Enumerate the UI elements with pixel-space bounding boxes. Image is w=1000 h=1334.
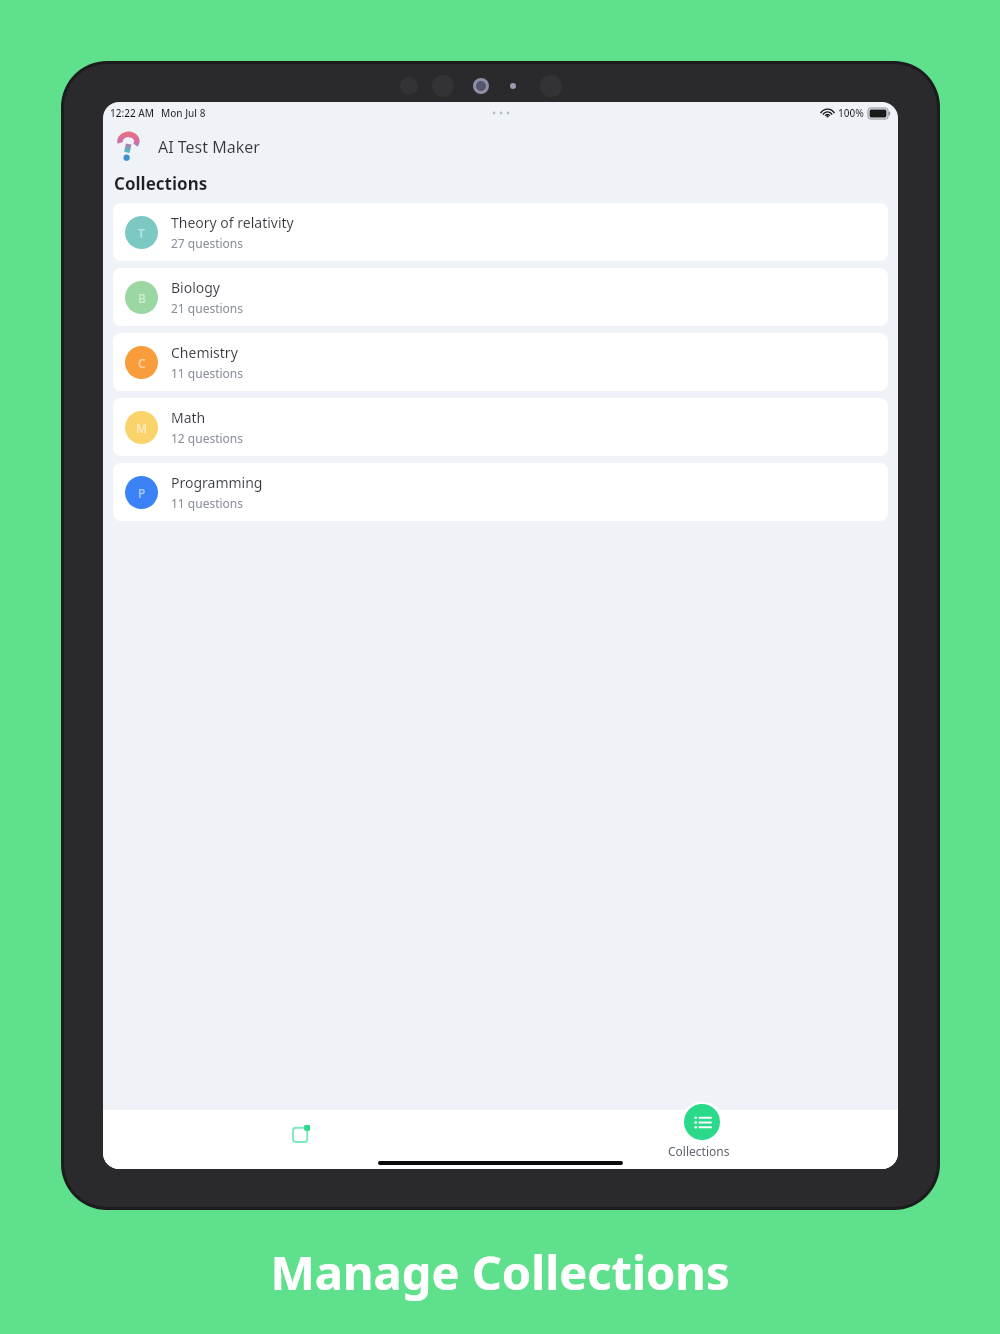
staticText: 11 questions xyxy=(171,495,244,511)
staticText: AI Test Maker xyxy=(158,136,260,158)
button[interactable]: Collections xyxy=(500,1110,898,1169)
staticText: Collections xyxy=(114,172,208,195)
button[interactable]: B xyxy=(113,268,888,326)
button[interactable]: P xyxy=(113,463,888,521)
staticText: 100% xyxy=(838,106,864,120)
button[interactable]: C xyxy=(113,333,888,391)
staticText: Manage Collections xyxy=(0,1240,1000,1304)
staticText: 11 questions xyxy=(171,365,244,381)
staticText: 12 questions xyxy=(171,430,244,446)
staticText: Mon Jul 8 xyxy=(161,106,206,120)
button[interactable]: M xyxy=(113,398,888,456)
staticText: 12:22 AM xyxy=(110,106,154,120)
staticText: M xyxy=(136,420,148,436)
button[interactable]: T xyxy=(113,203,888,261)
staticText: P xyxy=(138,485,146,501)
staticText: T xyxy=(138,225,145,241)
staticText: Theory of relativity xyxy=(171,213,294,232)
staticText: 27 questions xyxy=(171,235,244,251)
staticText: 21 questions xyxy=(171,300,244,316)
staticText: Chemistry xyxy=(171,343,238,362)
staticText: Collections xyxy=(668,1143,730,1159)
staticText: Programming xyxy=(171,473,263,492)
button[interactable]: Generate xyxy=(103,1110,500,1169)
button[interactable]: Collections xyxy=(684,1104,720,1140)
staticText: C xyxy=(138,355,146,371)
staticText: Biology xyxy=(171,278,221,297)
staticText: Math xyxy=(171,408,206,427)
staticText: B xyxy=(138,290,146,306)
